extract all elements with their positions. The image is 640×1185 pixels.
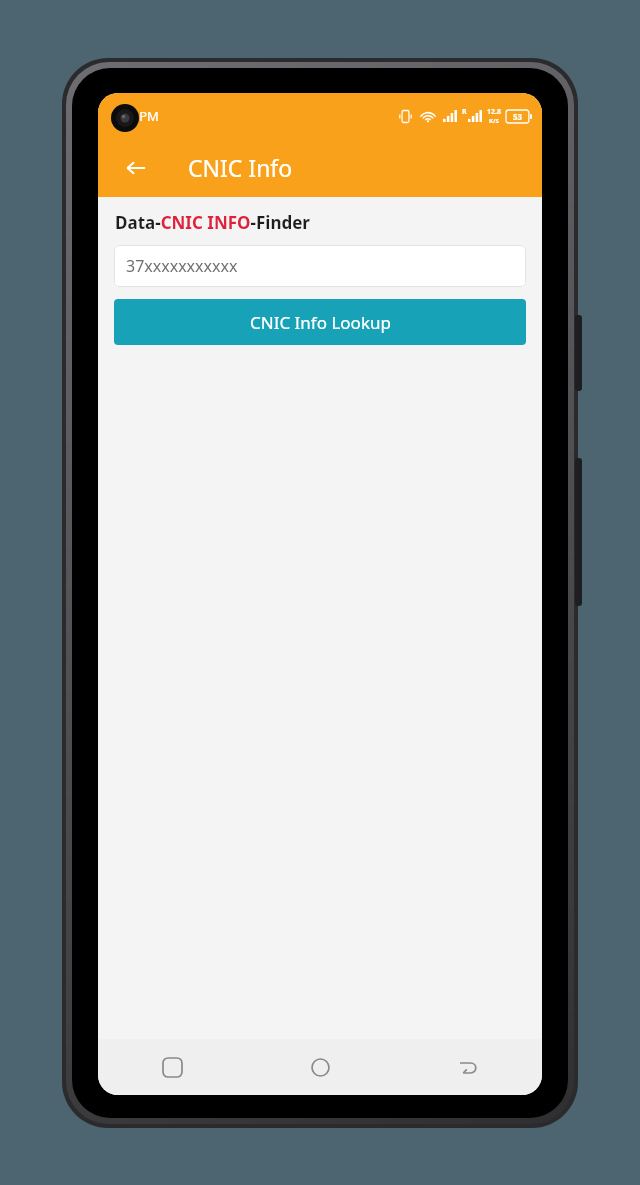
staticText: 53 bbox=[513, 111, 523, 122]
staticText: 12.8 bbox=[487, 107, 501, 117]
button[interactable]: Back bbox=[394, 1039, 542, 1095]
staticText: 37xxxxxxxxxxx bbox=[126, 255, 238, 277]
button[interactable]: Home bbox=[246, 1039, 394, 1095]
staticText: R bbox=[462, 107, 467, 117]
staticText: CNIC Info bbox=[188, 152, 293, 183]
button[interactable]: Recent apps bbox=[98, 1039, 246, 1095]
button[interactable]: 37xxxxxxxxxxx bbox=[114, 245, 526, 287]
staticText: K/S bbox=[489, 117, 499, 125]
button[interactable]: Back bbox=[114, 146, 158, 190]
staticText: Data-CNIC INFO-Finder bbox=[115, 211, 310, 234]
staticText: CNIC Info Lookup bbox=[250, 311, 391, 334]
staticText: 34 PM bbox=[121, 107, 159, 125]
button[interactable]: CNIC Info Lookup bbox=[114, 299, 526, 345]
